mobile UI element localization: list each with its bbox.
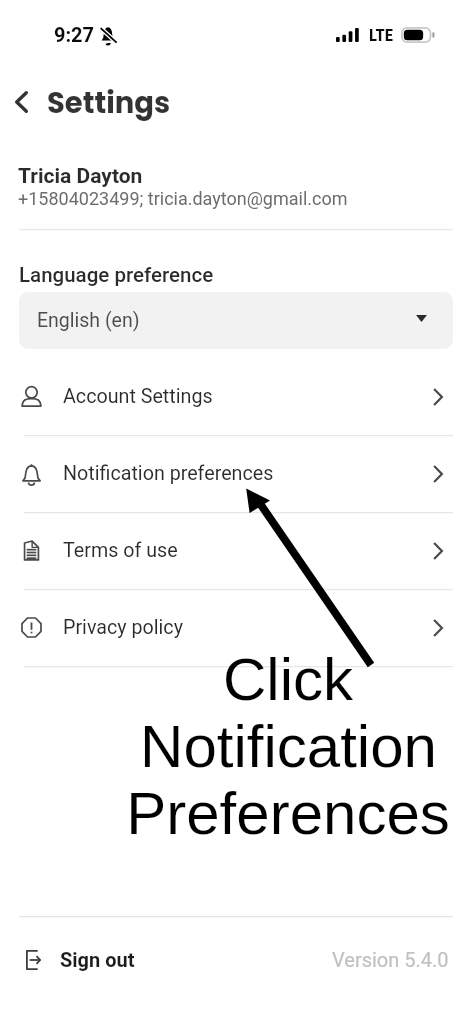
staticText: Tricia Dayton	[18, 164, 143, 189]
button[interactable]: Privacy policy	[0, 589, 472, 666]
staticText: Settings	[47, 83, 171, 124]
staticText: Click	[223, 646, 353, 713]
staticText: LTE	[369, 25, 394, 45]
staticText: Notification	[140, 713, 437, 780]
staticText: 9:27	[54, 23, 95, 46]
staticText: Sign out	[60, 948, 135, 971]
staticText: Preferences	[126, 780, 450, 847]
staticText: Privacy policy	[63, 616, 183, 639]
button[interactable]: Notification preferences	[0, 435, 472, 512]
staticText: Notification preferences	[63, 462, 274, 485]
staticText: Account Settings	[63, 385, 213, 408]
staticText: +15804023499; tricia.dayton@gmail.com	[18, 188, 348, 209]
staticText: Terms of use	[63, 539, 178, 562]
staticText: Language preference	[19, 263, 214, 287]
button[interactable]: Account Settings	[0, 358, 472, 435]
staticText: Version 5.4.0	[332, 948, 449, 971]
button[interactable]: English (en)	[19, 292, 453, 349]
button[interactable]: Back	[4, 85, 38, 119]
button[interactable]: Terms of use	[0, 512, 472, 589]
staticText: English (en)	[37, 309, 140, 332]
button[interactable]: Sign out	[0, 931, 472, 988]
